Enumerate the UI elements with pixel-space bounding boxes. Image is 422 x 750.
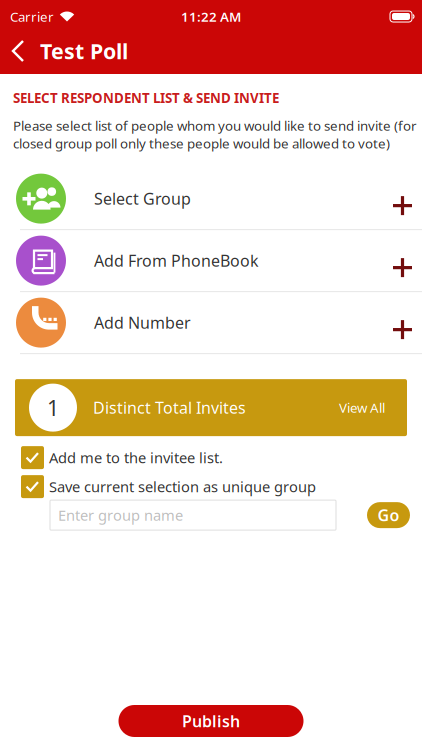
button[interactable]: Add Number [0, 292, 422, 353]
staticText: Test Poll [40, 37, 128, 65]
staticText: Save current selection as unique group [49, 477, 316, 496]
button[interactable]: Save current selection as unique group [0, 475, 422, 498]
button[interactable]: Go [367, 502, 410, 528]
staticText: Add me to the invitee list. [49, 448, 223, 467]
button[interactable]: Select Group [0, 168, 422, 229]
button[interactable]: View All [339, 399, 407, 416]
button[interactable]: Add me to the invitee list. [0, 446, 422, 469]
staticText: Publish [182, 710, 240, 732]
staticText: Please select list of people whom you wo… [13, 117, 417, 152]
staticText: Add Number [94, 312, 191, 333]
staticText: View All [339, 399, 385, 416]
staticText: Select Group [94, 188, 191, 209]
staticText: Add From PhoneBook [94, 250, 259, 271]
staticText: 1 [47, 393, 59, 422]
staticText: 11:22 AM [181, 8, 241, 25]
button[interactable]: Publish [118, 705, 303, 737]
staticText: Enter group name [58, 505, 183, 525]
staticText: Go [377, 504, 399, 526]
staticText: Carrier [10, 8, 54, 25]
button[interactable]: Add From PhoneBook [0, 230, 422, 291]
staticText: SELECT RESPONDENT LIST & SEND INVITE [13, 89, 279, 107]
button[interactable]: Back [0, 40, 25, 62]
staticText: Distinct Total Invites [93, 397, 246, 418]
